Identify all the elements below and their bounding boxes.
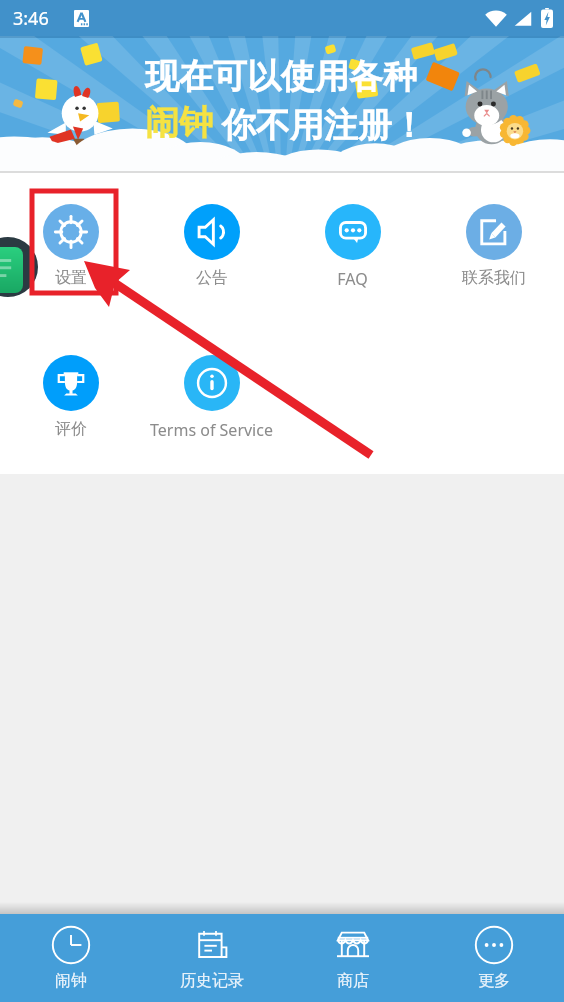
- button[interactable]: 闹钟: [0, 914, 141, 1002]
- button[interactable]: 更多: [423, 914, 564, 1002]
- staticText: 更多: [478, 971, 510, 991]
- staticText: 历史记录: [180, 971, 244, 991]
- button[interactable]: 设置: [0, 204, 141, 288]
- staticText: FAQ: [337, 268, 368, 290]
- button[interactable]: Floating shortcut: [0, 237, 38, 297]
- button[interactable]: 商店: [282, 914, 423, 1002]
- button[interactable]: 联系我们: [423, 204, 564, 288]
- staticText: 公告: [196, 268, 228, 288]
- button[interactable]: 公告: [141, 204, 282, 288]
- button[interactable]: FAQ: [282, 204, 423, 290]
- staticText: 联系我们: [462, 268, 526, 288]
- staticText: 3:46: [13, 6, 49, 31]
- staticText: 评价: [55, 419, 87, 439]
- staticText: 设置: [55, 268, 87, 288]
- staticText: 闹钟: [145, 101, 213, 144]
- button[interactable]: Terms of Service: [141, 355, 282, 441]
- staticText: 你不用注册！: [213, 101, 426, 147]
- staticText: 闹钟: [55, 971, 87, 991]
- staticText: Terms of Service: [150, 419, 273, 441]
- staticText: 商店: [337, 971, 369, 991]
- button[interactable]: 历史记录: [141, 914, 282, 1002]
- staticText: 现在可以使用各种: [145, 55, 417, 98]
- button[interactable]: 评价: [0, 355, 141, 439]
